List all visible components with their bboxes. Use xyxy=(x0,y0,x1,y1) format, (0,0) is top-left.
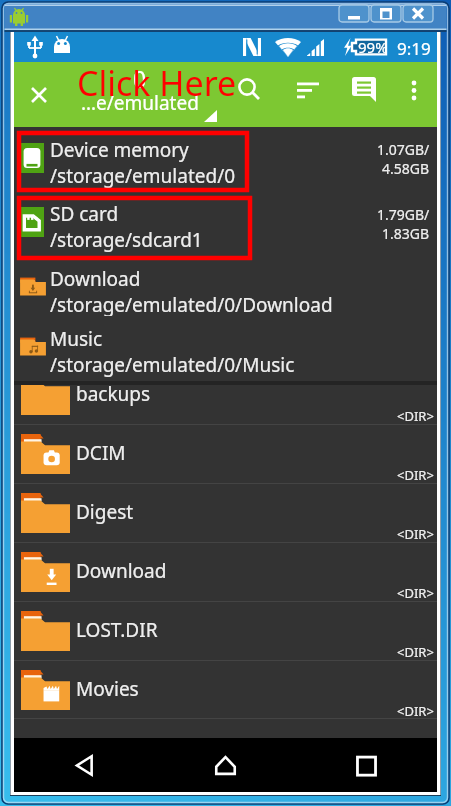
staticText: Download xyxy=(50,266,141,292)
staticText: 4.58GB xyxy=(382,159,430,178)
button[interactable]: Movies xyxy=(14,661,437,719)
button[interactable]: Download xyxy=(14,256,437,316)
staticText: Device memory xyxy=(50,137,189,163)
button[interactable]: Messages xyxy=(346,69,394,119)
staticText: /storage/emulated/0 xyxy=(50,163,236,189)
staticText: backups xyxy=(76,385,151,407)
button[interactable]: SD card xyxy=(14,191,437,256)
button[interactable]: Minimize xyxy=(338,5,370,22)
button[interactable]: LOST.DIR xyxy=(14,602,437,661)
button[interactable]: Back xyxy=(14,738,155,792)
staticText: Download xyxy=(76,558,167,584)
button[interactable]: DCIM xyxy=(14,425,437,484)
staticText: 99% xyxy=(358,37,388,57)
button[interactable]: More options xyxy=(396,69,436,119)
staticText: <DIR> xyxy=(397,584,434,602)
staticText: /storage/emulated/0/Download xyxy=(50,292,333,318)
button[interactable]: Recents xyxy=(296,738,437,792)
button[interactable]: Close xyxy=(402,5,434,22)
staticText: Movies xyxy=(76,676,139,702)
button[interactable]: Sort xyxy=(292,69,340,119)
staticText: LOST.DIR xyxy=(76,617,158,643)
button[interactable]: Download xyxy=(14,543,437,602)
button[interactable]: Search xyxy=(237,69,285,119)
button[interactable]: Home xyxy=(155,738,296,792)
button[interactable]: Music xyxy=(14,316,437,381)
staticText: Music xyxy=(50,326,103,352)
button[interactable]: Close xyxy=(24,80,54,110)
button[interactable]: Device memory xyxy=(14,127,437,191)
staticText: <DIR> xyxy=(397,407,434,425)
staticText: <DIR> xyxy=(397,466,434,484)
staticText: 1.83GB xyxy=(382,224,430,243)
staticText: /storage/sdcard1 xyxy=(50,227,203,253)
staticText: <DIR> xyxy=(397,702,434,720)
staticText: Digest xyxy=(76,499,134,525)
button[interactable]: Digest xyxy=(14,484,437,543)
button[interactable]: Maximize xyxy=(370,5,402,22)
staticText: /storage/emulated/0/Music xyxy=(50,352,295,378)
staticText: <DIR> xyxy=(397,525,434,543)
staticText: <DIR> xyxy=(397,643,434,661)
staticText: 1.79GB/ xyxy=(377,205,430,224)
staticText: 9:19 xyxy=(397,37,431,60)
staticText: 0 xyxy=(133,63,147,94)
staticText: 1.07GB/ xyxy=(377,140,430,159)
staticText: DCIM xyxy=(76,440,126,466)
staticText: SD card xyxy=(50,201,119,227)
staticText: Click Here xyxy=(77,60,237,106)
button[interactable]: backups xyxy=(14,385,437,425)
staticText: …e/emulated xyxy=(81,90,199,116)
